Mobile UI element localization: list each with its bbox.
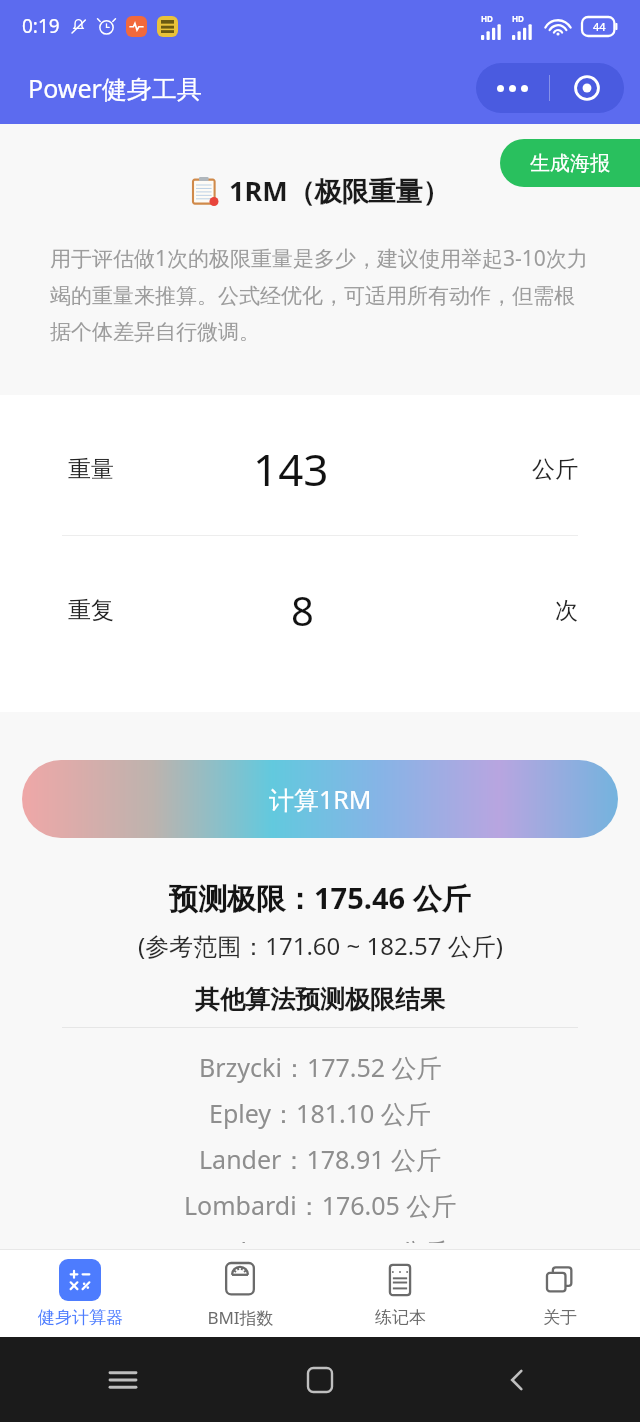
staticText: 0:19 bbox=[22, 13, 60, 39]
staticText: 关于 bbox=[543, 1307, 577, 1328]
button[interactable]: 重量 bbox=[68, 437, 578, 501]
staticText: HD bbox=[512, 13, 524, 24]
button[interactable]: More options bbox=[476, 63, 549, 113]
button[interactable]: 健身计算器 bbox=[0, 1250, 160, 1337]
button[interactable]: Back bbox=[494, 1357, 540, 1403]
button[interactable]: 计算1RM bbox=[22, 760, 618, 838]
staticText: 44 bbox=[593, 19, 606, 34]
staticText: 健身计算器 bbox=[38, 1307, 123, 1328]
staticText: 生成海报 bbox=[530, 151, 610, 176]
staticText: 1RM（极限重量） bbox=[229, 172, 450, 209]
staticText: 重复 bbox=[68, 596, 114, 625]
staticText: Brzycki：177.52 公斤 bbox=[199, 1050, 442, 1084]
button[interactable]: Recents bbox=[100, 1357, 146, 1403]
staticText: 次 bbox=[555, 596, 578, 625]
staticText: 计算1RM bbox=[269, 782, 372, 816]
staticText: 143 bbox=[253, 439, 329, 499]
button[interactable]: 练记本 bbox=[320, 1250, 480, 1337]
staticText: HD bbox=[481, 13, 493, 24]
button[interactable]: 重复 bbox=[68, 578, 578, 642]
staticText: (参考范围：171.60 ~ 182.57 公斤) bbox=[138, 929, 503, 962]
button[interactable]: Home bbox=[297, 1357, 343, 1403]
staticText: BMI指数 bbox=[207, 1306, 274, 1329]
button[interactable]: BMI指数 bbox=[160, 1250, 320, 1337]
staticText: 重量 bbox=[68, 455, 114, 484]
staticText: 8 bbox=[291, 583, 314, 637]
button[interactable]: 生成海报 bbox=[500, 139, 640, 187]
staticText: Mayhew：180.59 公斤 bbox=[191, 1234, 449, 1243]
staticText: Power健身工具 bbox=[28, 71, 202, 105]
staticText: 其他算法预测极限结果 bbox=[195, 984, 445, 1015]
staticText: 练记本 bbox=[375, 1307, 426, 1328]
staticText: Lander：178.91 公斤 bbox=[199, 1142, 442, 1176]
button[interactable]: Close bbox=[550, 63, 624, 113]
staticText: 预测极限：175.46 公斤 bbox=[169, 878, 471, 918]
staticText: Epley：181.10 公斤 bbox=[209, 1096, 431, 1130]
staticText: Lombardi：176.05 公斤 bbox=[184, 1188, 457, 1222]
button[interactable]: 关于 bbox=[480, 1250, 640, 1337]
staticText: 用于评估做1次的极限重量是多少，建议使用举起3-10次力竭的重量来推算。公式经优… bbox=[50, 244, 594, 345]
staticText: 公斤 bbox=[532, 455, 578, 484]
